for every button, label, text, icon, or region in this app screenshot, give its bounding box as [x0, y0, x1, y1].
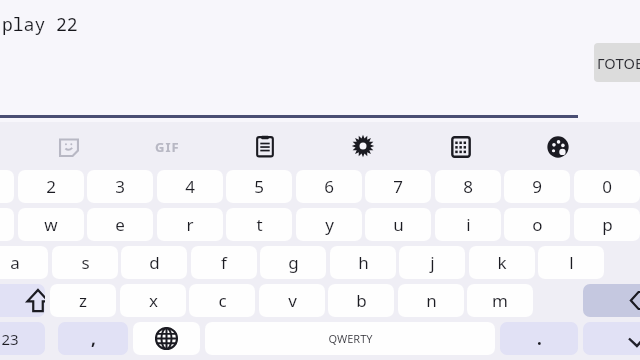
button[interactable]: x: [120, 284, 186, 317]
button[interactable]: z: [50, 284, 116, 317]
staticText: n: [426, 289, 437, 312]
button[interactable]: o: [504, 208, 570, 241]
button[interactable]: 9: [504, 170, 570, 203]
staticText: y: [325, 213, 334, 236]
button[interactable]: v: [259, 284, 325, 317]
button[interactable]: ГОТОВО: [594, 43, 640, 82]
staticText: play 22: [2, 12, 78, 37]
staticText: 0: [602, 175, 612, 198]
staticText: j: [430, 251, 435, 274]
staticText: ГОТОВО: [597, 53, 640, 73]
staticText: 9: [532, 175, 542, 198]
staticText: p: [602, 213, 613, 236]
staticText: 4: [185, 175, 195, 198]
button[interactable]: h: [330, 246, 396, 279]
staticText: 7: [393, 175, 403, 198]
button[interactable]: n: [398, 284, 464, 317]
staticText: e: [115, 213, 125, 236]
button[interactable]: m: [467, 284, 533, 317]
button[interactable]: ,: [58, 322, 128, 355]
button[interactable]: e: [87, 208, 153, 241]
button[interactable]: r: [157, 208, 223, 241]
button[interactable]: 1: [0, 170, 14, 203]
staticText: z: [79, 289, 87, 312]
button[interactable]: g: [260, 246, 326, 279]
staticText: k: [497, 251, 507, 274]
staticText: b: [356, 289, 367, 312]
button[interactable]: .: [500, 322, 578, 355]
button[interactable]: q: [0, 208, 14, 241]
button[interactable]: s: [52, 246, 118, 279]
button[interactable]: 8: [435, 170, 501, 203]
staticText: QWERTY: [328, 331, 373, 346]
button[interactable]: w: [18, 208, 84, 241]
button[interactable]: 4: [157, 170, 223, 203]
button[interactable]: c: [189, 284, 255, 317]
staticText: x: [149, 289, 158, 312]
staticText: 8: [463, 175, 473, 198]
button[interactable]: Enter: [583, 322, 640, 355]
staticText: v: [288, 289, 297, 312]
button[interactable]: Number pad: [447, 133, 475, 161]
button[interactable]: 3: [87, 170, 153, 203]
staticText: d: [149, 251, 160, 274]
button[interactable]: Clipboard: [251, 132, 279, 160]
button[interactable]: 6: [296, 170, 362, 203]
staticText: o: [532, 213, 543, 236]
staticText: f: [221, 251, 227, 274]
button[interactable]: t: [226, 208, 292, 241]
staticText: t: [256, 213, 263, 236]
button[interactable]: y: [296, 208, 362, 241]
staticText: w: [44, 213, 58, 236]
button[interactable]: Shift: [0, 284, 45, 317]
button[interactable]: j: [399, 246, 465, 279]
staticText: u: [393, 213, 404, 236]
button[interactable]: l: [538, 246, 604, 279]
staticText: c: [218, 289, 227, 312]
staticText: g: [288, 251, 299, 274]
button[interactable]: ?123: [0, 322, 45, 355]
button[interactable]: p: [574, 208, 640, 241]
button[interactable]: 0: [574, 170, 640, 203]
staticText: h: [358, 251, 369, 274]
staticText: 6: [324, 175, 334, 198]
staticText: l: [569, 251, 574, 274]
button[interactable]: Settings: [349, 132, 377, 160]
staticText: s: [81, 251, 90, 274]
staticText: ?123: [0, 329, 19, 349]
button[interactable]: QWERTY: [205, 322, 495, 355]
staticText: GIF: [155, 138, 180, 156]
staticText: a: [10, 251, 20, 274]
button[interactable]: Stickers: [55, 133, 83, 161]
staticText: 2: [46, 175, 56, 198]
button[interactable]: a: [0, 246, 48, 279]
button[interactable]: u: [365, 208, 431, 241]
staticText: .: [537, 327, 542, 350]
button[interactable]: 2: [18, 170, 84, 203]
staticText: 5: [254, 175, 264, 198]
staticText: i: [466, 213, 471, 236]
button[interactable]: Language: [133, 322, 200, 355]
staticText: r: [186, 213, 194, 236]
staticText: 3: [115, 175, 125, 198]
button[interactable]: b: [328, 284, 394, 317]
button[interactable]: i: [435, 208, 501, 241]
button[interactable]: Theme: [544, 133, 572, 161]
button[interactable]: d: [121, 246, 187, 279]
button[interactable]: 5: [226, 170, 292, 203]
button[interactable]: GIF: [152, 133, 182, 161]
button[interactable]: k: [469, 246, 535, 279]
staticText: ,: [91, 327, 96, 350]
staticText: m: [492, 289, 508, 312]
button[interactable]: Backspace: [583, 284, 640, 317]
button[interactable]: f: [191, 246, 257, 279]
button[interactable]: 7: [365, 170, 431, 203]
